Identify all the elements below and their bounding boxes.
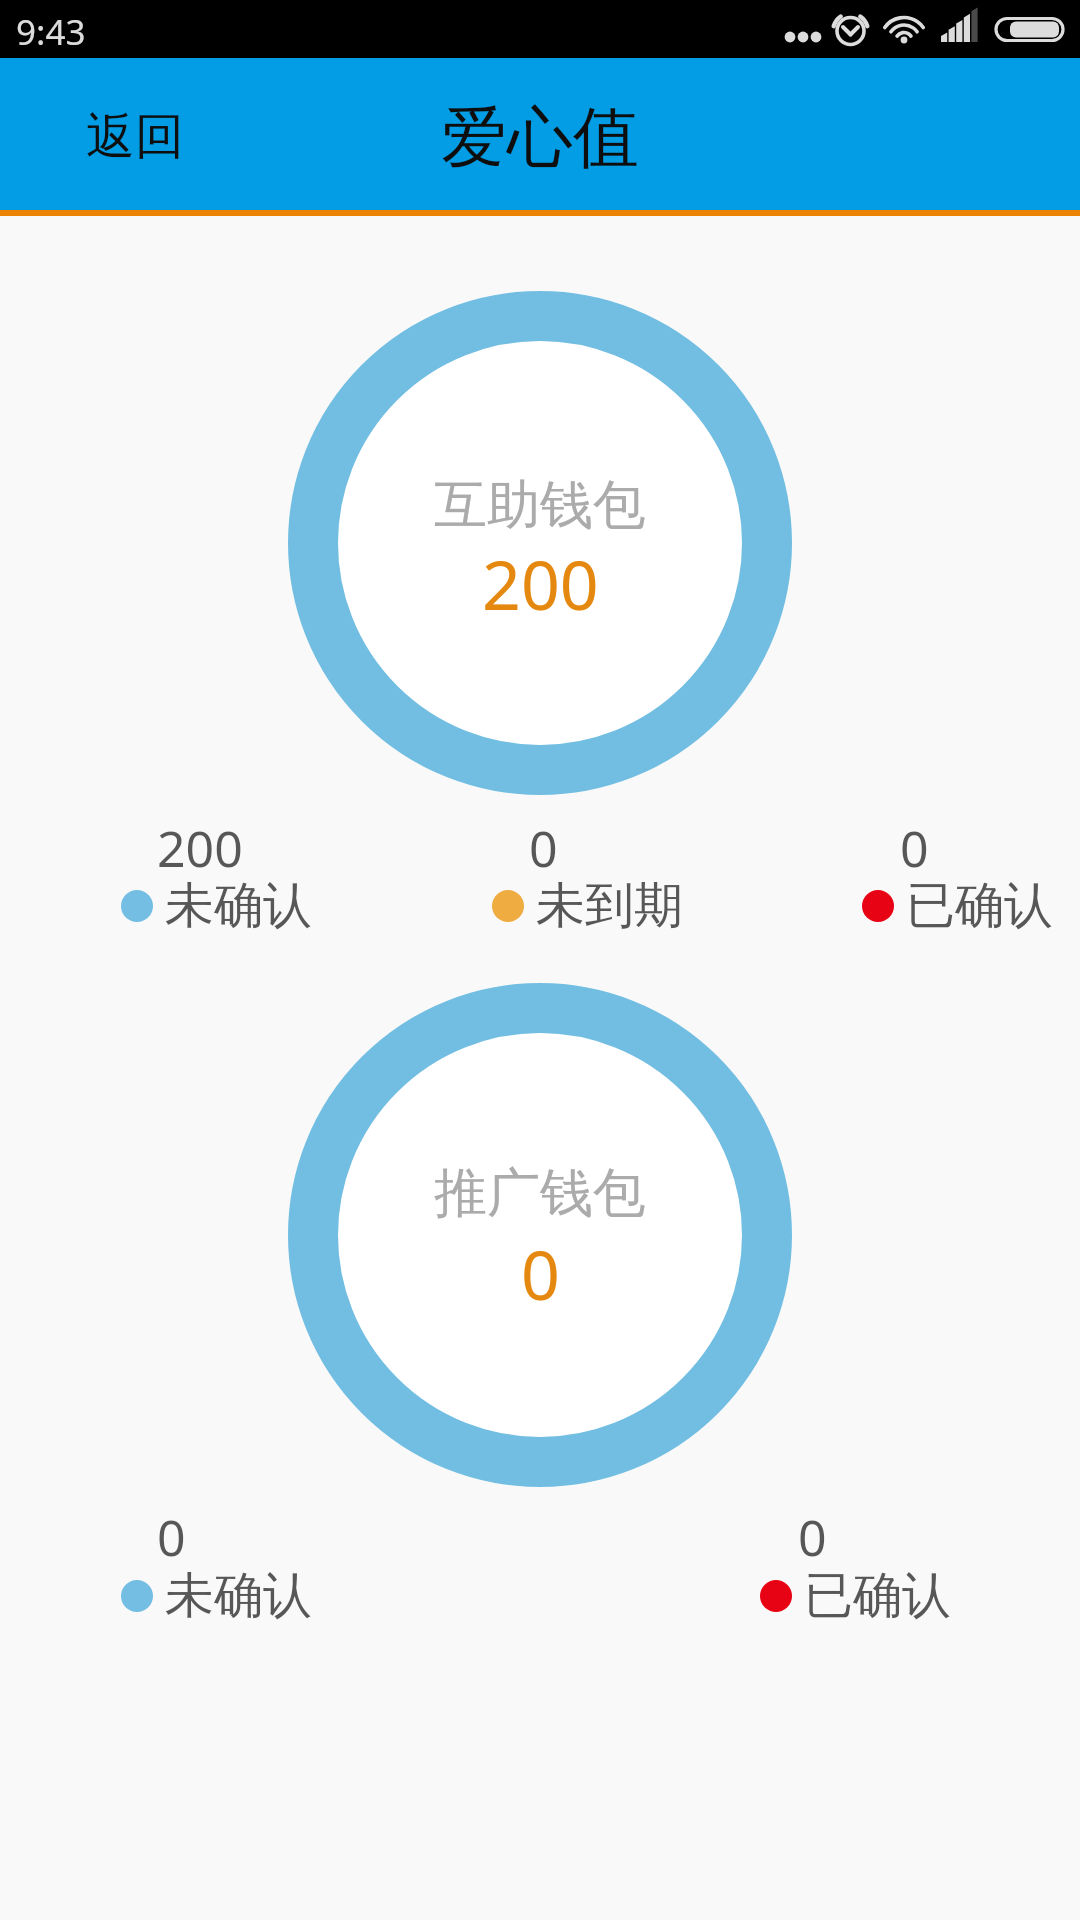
staticText: 未到期 xyxy=(536,875,683,937)
staticText: 未确认 xyxy=(165,875,312,937)
staticText: 互助钱包 xyxy=(434,472,646,539)
staticText: 0 xyxy=(529,814,558,882)
staticText: 已确认 xyxy=(804,1565,951,1627)
button[interactable]: 0 xyxy=(121,1503,313,1621)
button[interactable]: 200 xyxy=(121,814,313,931)
staticText: 推广钱包 xyxy=(434,1160,646,1227)
staticText: 0 xyxy=(798,1503,827,1571)
staticText: 0 xyxy=(900,814,929,882)
staticText: 0 xyxy=(521,1227,560,1320)
staticText: 9:43 xyxy=(16,8,86,56)
staticText: 200 xyxy=(482,537,599,630)
staticText: 未确认 xyxy=(165,1565,312,1627)
staticText: 已确认 xyxy=(906,875,1053,937)
staticText: 200 xyxy=(157,814,243,882)
button[interactable]: 0 xyxy=(862,814,1054,931)
staticText: 0 xyxy=(157,1503,186,1571)
staticText: 返回 xyxy=(86,106,184,168)
button[interactable]: 0 xyxy=(760,1503,952,1621)
button[interactable]: 0 xyxy=(492,814,684,931)
button[interactable]: 返回 xyxy=(40,58,230,210)
staticText: 爱心值 xyxy=(441,96,639,179)
